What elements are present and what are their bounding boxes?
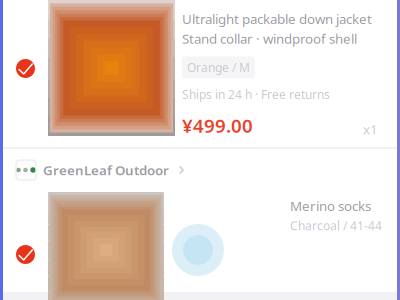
button[interactable]: Item selected (0, 149, 35, 264)
staticText: Charcoal / 41-44 (290, 218, 382, 234)
staticText: Orange / M (187, 59, 250, 75)
staticText: GreenLeaf Outdoor (43, 161, 169, 179)
staticText: x1 (363, 120, 378, 138)
staticText: ¥499.00 (182, 113, 253, 138)
staticText: Stand collar · windproof shell (182, 30, 357, 47)
staticText: Merino socks (290, 197, 371, 215)
button[interactable]: Item selected (0, 0, 35, 78)
button[interactable]: GreenLeaf Outdoor store (0, 149, 187, 180)
staticText: Ships in 24 h · Free returns (182, 86, 330, 102)
staticText: Ultralight packable down jacket (182, 10, 372, 28)
